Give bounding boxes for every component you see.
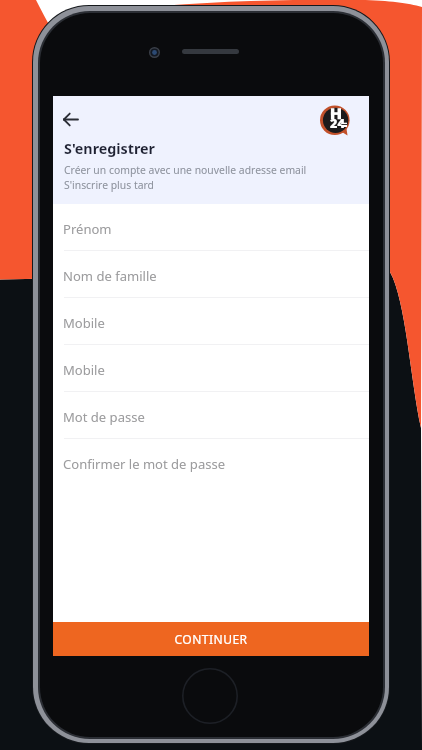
staticText: CONTINUER	[174, 631, 248, 647]
staticText: Mobile	[63, 314, 105, 332]
button[interactable]: Back	[57, 106, 84, 133]
button[interactable]: Prénom	[53, 204, 369, 251]
staticText: S'inscrire plus tard	[64, 178, 154, 192]
staticText: Créer un compte avec une nouvelle adress…	[64, 163, 307, 177]
button[interactable]: Nom de famille	[53, 251, 369, 298]
staticText: Mobile	[63, 361, 105, 379]
staticText: 24	[330, 115, 345, 132]
button[interactable]: Mobile	[53, 298, 369, 345]
staticText: Confirmer le mot de passe	[63, 455, 226, 473]
button[interactable]: CONTINUER	[53, 622, 369, 656]
button[interactable]: Mot de passe	[53, 392, 369, 439]
button[interactable]: Mobile	[53, 345, 369, 392]
button[interactable]: H24 logo	[320, 105, 352, 137]
staticText: Mot de passe	[63, 408, 145, 426]
staticText: S'enregistrer	[64, 139, 156, 158]
button[interactable]: Confirmer le mot de passe	[53, 439, 369, 486]
staticText: Nom de famille	[63, 267, 157, 285]
staticText: Prénom	[63, 220, 112, 238]
